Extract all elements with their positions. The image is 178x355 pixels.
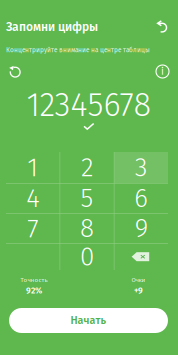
button[interactable]: Undo xyxy=(151,18,172,36)
button[interactable]: 1 xyxy=(6,152,60,183)
staticText: Запомни цифры xyxy=(6,20,98,34)
staticText: Очки xyxy=(131,276,145,284)
staticText: Концентрируйте внимание на центре таблиц… xyxy=(6,46,150,54)
button[interactable]: 0 xyxy=(60,244,114,270)
staticText: i xyxy=(161,65,164,77)
staticText: 5 xyxy=(80,183,93,214)
staticText: 4 xyxy=(26,183,39,214)
staticText: 9 xyxy=(135,213,148,244)
button[interactable]: 3 xyxy=(114,152,168,183)
button[interactable]: 5 xyxy=(60,184,114,213)
staticText: 7 xyxy=(27,213,38,244)
button[interactable]: 6 xyxy=(114,184,168,213)
button[interactable]: 7 xyxy=(6,214,60,243)
button[interactable]: 8 xyxy=(60,214,114,243)
staticText: 6 xyxy=(134,183,148,214)
button[interactable]: Info xyxy=(153,62,172,81)
button[interactable]: 4 xyxy=(6,184,60,213)
staticText: Начать xyxy=(70,314,106,327)
staticText: 1 xyxy=(27,152,38,183)
button[interactable]: Restart xyxy=(6,62,24,81)
button[interactable]: 2 xyxy=(60,152,114,183)
staticText: 12345678 xyxy=(26,85,151,125)
staticText: 0 xyxy=(80,241,94,272)
button[interactable]: 9 xyxy=(114,214,168,243)
staticText: 2 xyxy=(81,152,93,183)
staticText: +9 xyxy=(134,286,143,296)
button[interactable]: Delete xyxy=(114,244,168,270)
staticText: Точность xyxy=(20,276,47,284)
staticText: 92% xyxy=(26,286,42,296)
staticText: 3 xyxy=(135,152,148,183)
staticText: 8 xyxy=(80,213,94,244)
button[interactable]: Начать xyxy=(9,308,168,333)
